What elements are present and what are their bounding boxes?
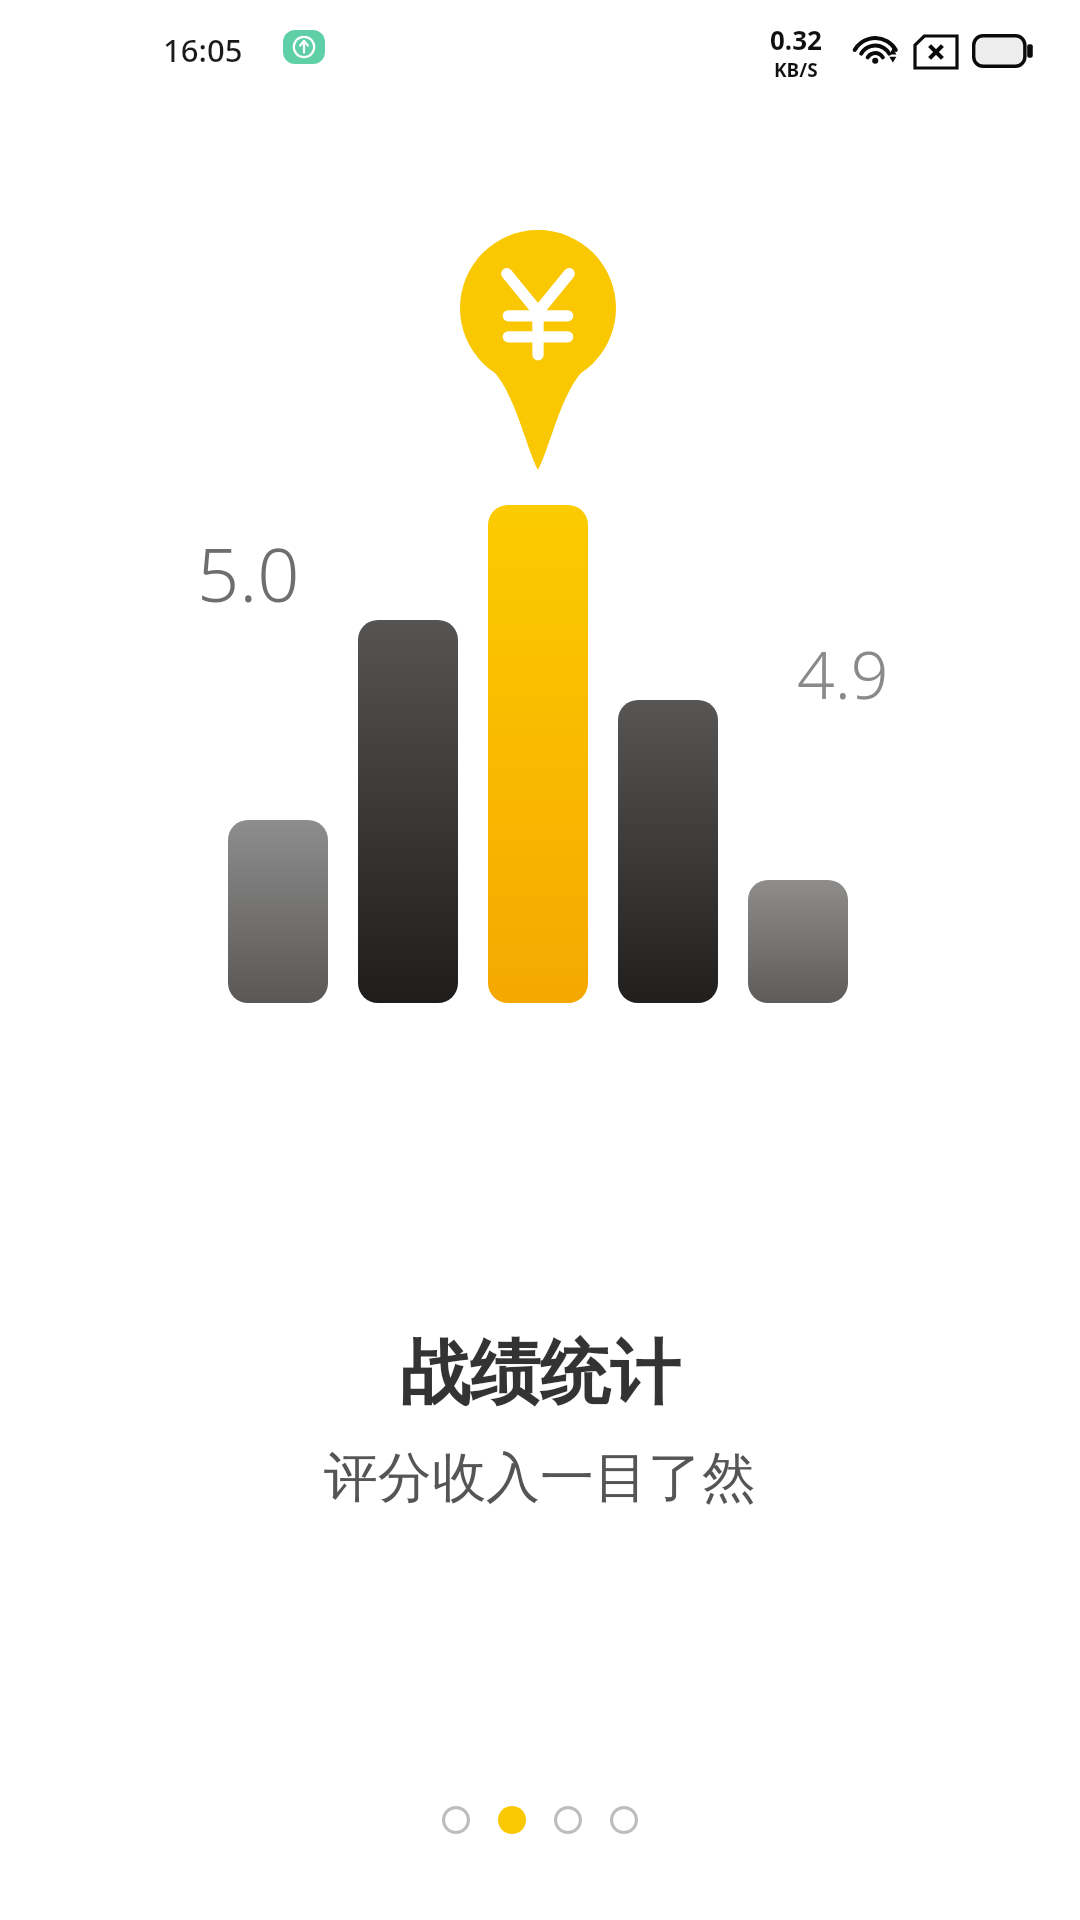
staticText: 战绩统计 — [400, 1330, 680, 1418]
staticText: KB/S — [774, 57, 818, 83]
button[interactable]: Page 1 — [442, 1806, 470, 1834]
button[interactable]: Page 4 — [610, 1806, 638, 1834]
staticText: 0.32 — [770, 22, 822, 57]
staticText: 4.9 — [797, 628, 889, 718]
staticText: 5.0 — [197, 523, 300, 624]
button[interactable]: Page 3 — [554, 1806, 582, 1834]
button[interactable]: Page 2 — [498, 1806, 526, 1834]
staticText: 评分收入一目了然 — [324, 1444, 756, 1512]
staticText: 16:05 — [163, 29, 243, 71]
